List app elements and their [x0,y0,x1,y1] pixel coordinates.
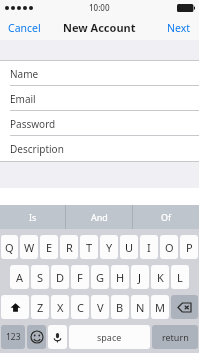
staticText: return [162,331,189,343]
staticText: Email [10,92,36,106]
staticText: Of [161,211,172,223]
button[interactable]: D [51,265,69,289]
staticText: I [147,240,151,255]
button[interactable]: Of [133,205,199,229]
staticText: space [97,331,122,343]
staticText: Y [106,240,113,255]
staticText: H [116,270,125,285]
staticText: W [24,240,35,255]
staticText: New Account [63,20,136,35]
button[interactable]: S [31,265,49,289]
button[interactable]: F [71,265,89,289]
button[interactable]: Q [1,235,18,259]
staticText: Q [5,240,14,255]
staticText: And [91,211,108,223]
button[interactable]: P [180,235,198,259]
button[interactable]: W [20,235,38,259]
staticText: N [136,300,145,315]
staticText: C [77,300,84,315]
button[interactable]: U [120,235,138,259]
staticText: U [125,240,134,255]
staticText: P [186,240,193,255]
staticText: S [37,270,44,285]
staticText: R [66,240,73,255]
button[interactable]: Backspace [171,295,198,319]
staticText: X [57,300,64,315]
button[interactable]: I [140,235,158,259]
button[interactable]: Shift [1,295,29,319]
staticText: D [56,270,65,285]
staticText: A [16,270,24,285]
staticText: F [77,270,83,285]
button[interactable]: V [91,295,109,319]
button[interactable]: C [71,295,89,319]
button[interactable]: Password [0,111,199,136]
button[interactable]: Description [0,136,199,161]
staticText: Is [29,211,37,223]
button[interactable]: Email [0,86,199,111]
staticText: B [116,300,124,315]
button[interactable]: Is [0,205,65,229]
staticText: E [46,240,53,255]
button[interactable]: Dictate [48,325,67,349]
staticText: Description [10,142,64,156]
button[interactable]: And [66,205,132,229]
button[interactable]: Cancel [0,17,49,39]
button[interactable]: M [151,295,169,319]
button[interactable]: E [40,235,58,259]
button[interactable]: X [51,295,69,319]
staticText: O [165,240,174,255]
button[interactable]: N [131,295,149,319]
staticText: Name [10,67,39,81]
button[interactable]: L [171,265,189,289]
button[interactable]: Name [0,61,199,86]
button[interactable]: B [111,295,129,319]
button[interactable]: G [91,265,109,289]
staticText: Next [167,21,191,35]
staticText: Password [10,117,56,131]
staticText: T [86,240,93,255]
button[interactable]: space [69,325,150,349]
button[interactable]: 123 [1,325,25,349]
staticText: Z [37,300,44,315]
staticText: K [157,270,164,285]
button[interactable]: Y [100,235,118,259]
staticText: 10:00 [89,2,110,13]
staticText: 123 [6,331,21,343]
staticText: V [97,300,104,315]
button[interactable]: A [10,265,29,289]
button[interactable]: Next [159,17,199,39]
staticText: M [155,300,165,315]
button[interactable]: return [152,325,198,349]
button[interactable]: H [111,265,129,289]
button[interactable]: T [80,235,98,259]
staticText: L [177,270,183,285]
button[interactable]: K [151,265,169,289]
button[interactable]: O [160,235,178,259]
staticText: Cancel [8,21,41,35]
staticText: J [138,270,142,285]
button[interactable]: R [60,235,78,259]
button[interactable]: Z [31,295,49,319]
staticText: G [96,270,105,285]
button[interactable]: Emoji [27,325,46,349]
button[interactable]: J [131,265,149,289]
